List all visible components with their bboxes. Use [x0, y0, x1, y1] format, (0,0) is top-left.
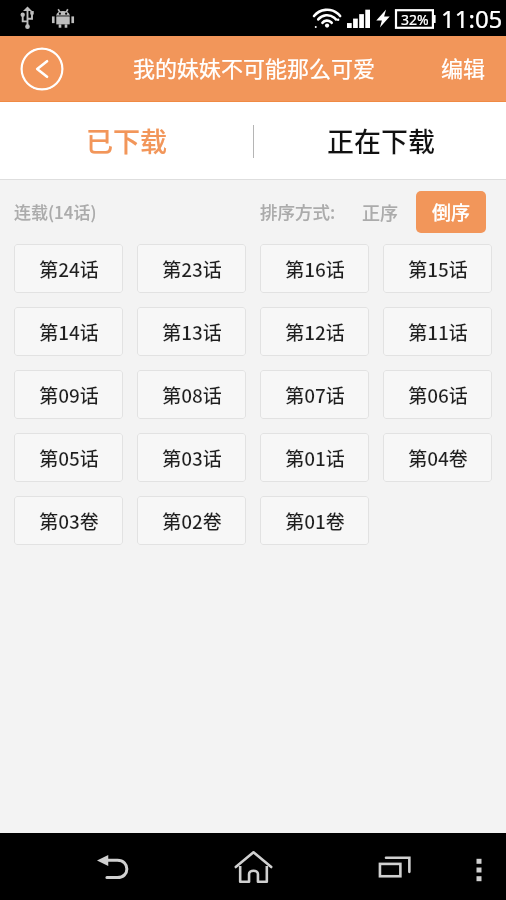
button[interactable]: 倒序 — [416, 191, 486, 233]
button[interactable]: 第14话 — [14, 307, 123, 356]
staticText: 第05话 — [39, 444, 99, 472]
button[interactable]: 第09话 — [14, 370, 123, 419]
button[interactable]: 第15话 — [383, 244, 492, 293]
staticText: 11:05 — [441, 2, 503, 35]
staticText: 已下载 — [86, 121, 167, 160]
button[interactable]: 第08话 — [137, 370, 246, 419]
button[interactable]: 第11话 — [383, 307, 492, 356]
button[interactable]: 第01卷 — [260, 496, 369, 545]
staticText: 正序 — [362, 199, 398, 225]
staticText: 第15话 — [408, 255, 468, 283]
staticText: 第03话 — [162, 444, 222, 472]
staticText: 第08话 — [162, 381, 222, 409]
staticText: 第12话 — [285, 318, 345, 346]
button[interactable]: 正在下载 — [253, 102, 506, 179]
button[interactable]: 第05话 — [14, 433, 123, 482]
button[interactable]: Back — [20, 47, 64, 91]
button[interactable]: More options — [451, 833, 506, 900]
staticText: 第24话 — [39, 255, 99, 283]
button[interactable]: Recent apps — [358, 833, 430, 900]
staticText: 正在下载 — [327, 121, 435, 160]
button[interactable]: 已下载 — [0, 102, 253, 179]
button[interactable]: 第23话 — [137, 244, 246, 293]
button[interactable]: 第12话 — [260, 307, 369, 356]
button[interactable]: Home — [213, 833, 293, 900]
staticText: 32% — [401, 10, 429, 29]
button[interactable]: 第03话 — [137, 433, 246, 482]
button[interactable]: 第04卷 — [383, 433, 492, 482]
button[interactable]: 第13话 — [137, 307, 246, 356]
staticText: 第01话 — [285, 444, 345, 472]
staticText: 第23话 — [162, 255, 222, 283]
staticText: 第07话 — [285, 381, 345, 409]
button[interactable]: 第01话 — [260, 433, 369, 482]
staticText: 第16话 — [285, 255, 345, 283]
staticText: 第09话 — [39, 381, 99, 409]
staticText: 第13话 — [162, 318, 222, 346]
staticText: 第04卷 — [408, 444, 468, 472]
staticText: 第11话 — [408, 318, 468, 346]
staticText: 第06话 — [408, 381, 468, 409]
button[interactable]: 第24话 — [14, 244, 123, 293]
button[interactable]: 编辑 — [423, 36, 506, 102]
button[interactable]: 第16话 — [260, 244, 369, 293]
button[interactable]: 第07话 — [260, 370, 369, 419]
button[interactable]: Back — [77, 833, 149, 900]
staticText: 第14话 — [39, 318, 99, 346]
staticText: 连载(14话) — [14, 199, 97, 224]
staticText: 我的妹妹不可能那么可爱 — [133, 51, 376, 83]
staticText: 编辑 — [441, 51, 486, 83]
staticText: 第03卷 — [39, 507, 99, 535]
staticText: 排序方式: — [260, 199, 336, 224]
button[interactable]: 第03卷 — [14, 496, 123, 545]
staticText: 倒序 — [432, 198, 471, 226]
staticText: 第02卷 — [162, 507, 222, 535]
button[interactable]: 正序 — [336, 191, 416, 233]
staticText: 第01卷 — [285, 507, 345, 535]
button[interactable]: 第02卷 — [137, 496, 246, 545]
button[interactable]: 第06话 — [383, 370, 492, 419]
